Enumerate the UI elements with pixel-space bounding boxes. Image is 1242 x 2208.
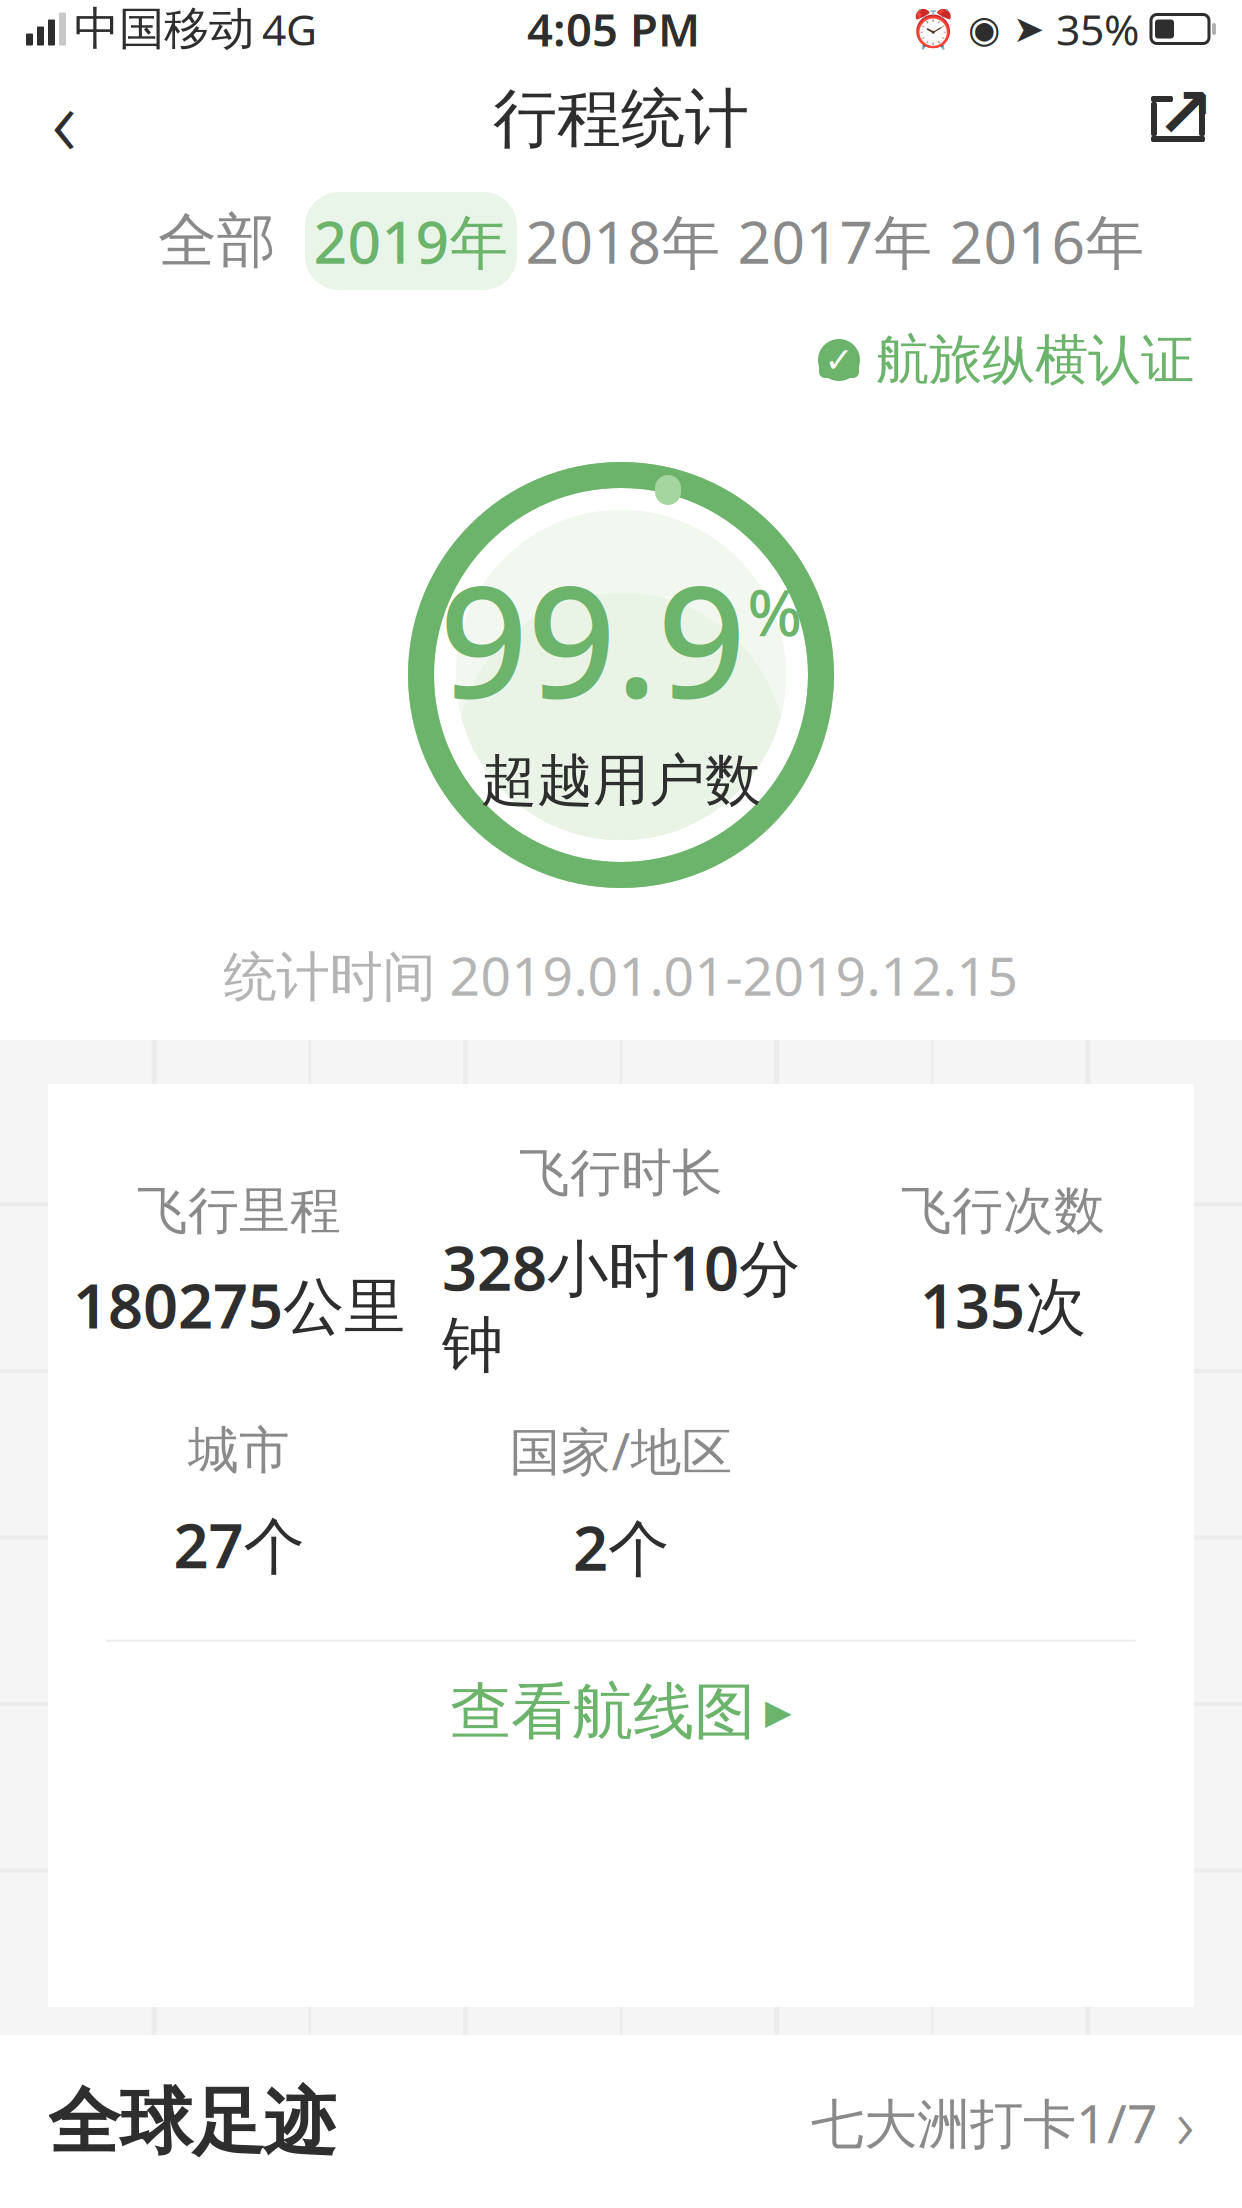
staticText: 99.9 bbox=[439, 535, 745, 740]
staticText: 统计时间 2019.01.01-2019.12.15 bbox=[223, 940, 1018, 1010]
staticText: 飞行里程 bbox=[137, 1180, 341, 1242]
staticText: 超越用户数 bbox=[481, 746, 761, 815]
staticText: › bbox=[1176, 2076, 1194, 2169]
staticText: 七大洲打卡1/7 bbox=[811, 2087, 1158, 2158]
staticText: 航旅纵横认证 bbox=[876, 327, 1194, 393]
staticText: 城市 bbox=[188, 1419, 290, 1482]
staticText: 180275公里 bbox=[73, 1264, 405, 1345]
staticText: 2018年 bbox=[525, 202, 720, 280]
staticText: ‹ bbox=[51, 55, 76, 183]
staticText: ◉ bbox=[968, 8, 1001, 50]
staticText: ▶ bbox=[765, 1692, 792, 1731]
staticText: 135次 bbox=[920, 1264, 1086, 1345]
staticText: 27个 bbox=[173, 1504, 304, 1585]
staticText: 全部 bbox=[158, 205, 276, 277]
staticText: 2016年 bbox=[949, 202, 1144, 280]
staticText: 4G bbox=[262, 1, 317, 57]
staticText: % bbox=[747, 569, 802, 654]
staticText: 328小时10分钟 bbox=[442, 1226, 800, 1383]
staticText: 飞行时长 bbox=[519, 1142, 723, 1204]
staticText: 2019年 bbox=[313, 202, 508, 280]
staticText: 中国移动 bbox=[74, 1, 254, 57]
staticText: 国家/地区 bbox=[509, 1417, 732, 1484]
staticText: ➤ bbox=[1013, 8, 1044, 50]
button[interactable]: 2016年 bbox=[941, 192, 1153, 290]
button[interactable]: 2019年 bbox=[305, 192, 517, 290]
staticText: 飞行次数 bbox=[901, 1180, 1105, 1242]
staticText: 2017年 bbox=[737, 202, 932, 280]
staticText: 35% bbox=[1056, 1, 1139, 57]
staticText: 2个 bbox=[573, 1506, 669, 1588]
staticText: 4:05 PM bbox=[527, 0, 700, 59]
button[interactable]: 全球足迹 bbox=[0, 2035, 1242, 2208]
staticText: ⏰ bbox=[910, 8, 956, 50]
button[interactable]: Back bbox=[16, 71, 112, 167]
button[interactable]: 全部 bbox=[129, 192, 305, 290]
button[interactable]: 2017年 bbox=[729, 192, 941, 290]
button[interactable]: 2018年 bbox=[517, 192, 729, 290]
staticText: ✓ bbox=[824, 340, 853, 380]
staticText: ↗ bbox=[1156, 74, 1214, 152]
button[interactable]: ✓ bbox=[816, 327, 1242, 393]
staticText: 行程统计 bbox=[493, 80, 749, 158]
button[interactable]: 查看航线图 bbox=[48, 1642, 1194, 1782]
staticText: 全球足迹 bbox=[48, 2078, 336, 2167]
button[interactable]: Share bbox=[1130, 71, 1226, 167]
staticText: 查看航线图 bbox=[450, 1674, 755, 1749]
